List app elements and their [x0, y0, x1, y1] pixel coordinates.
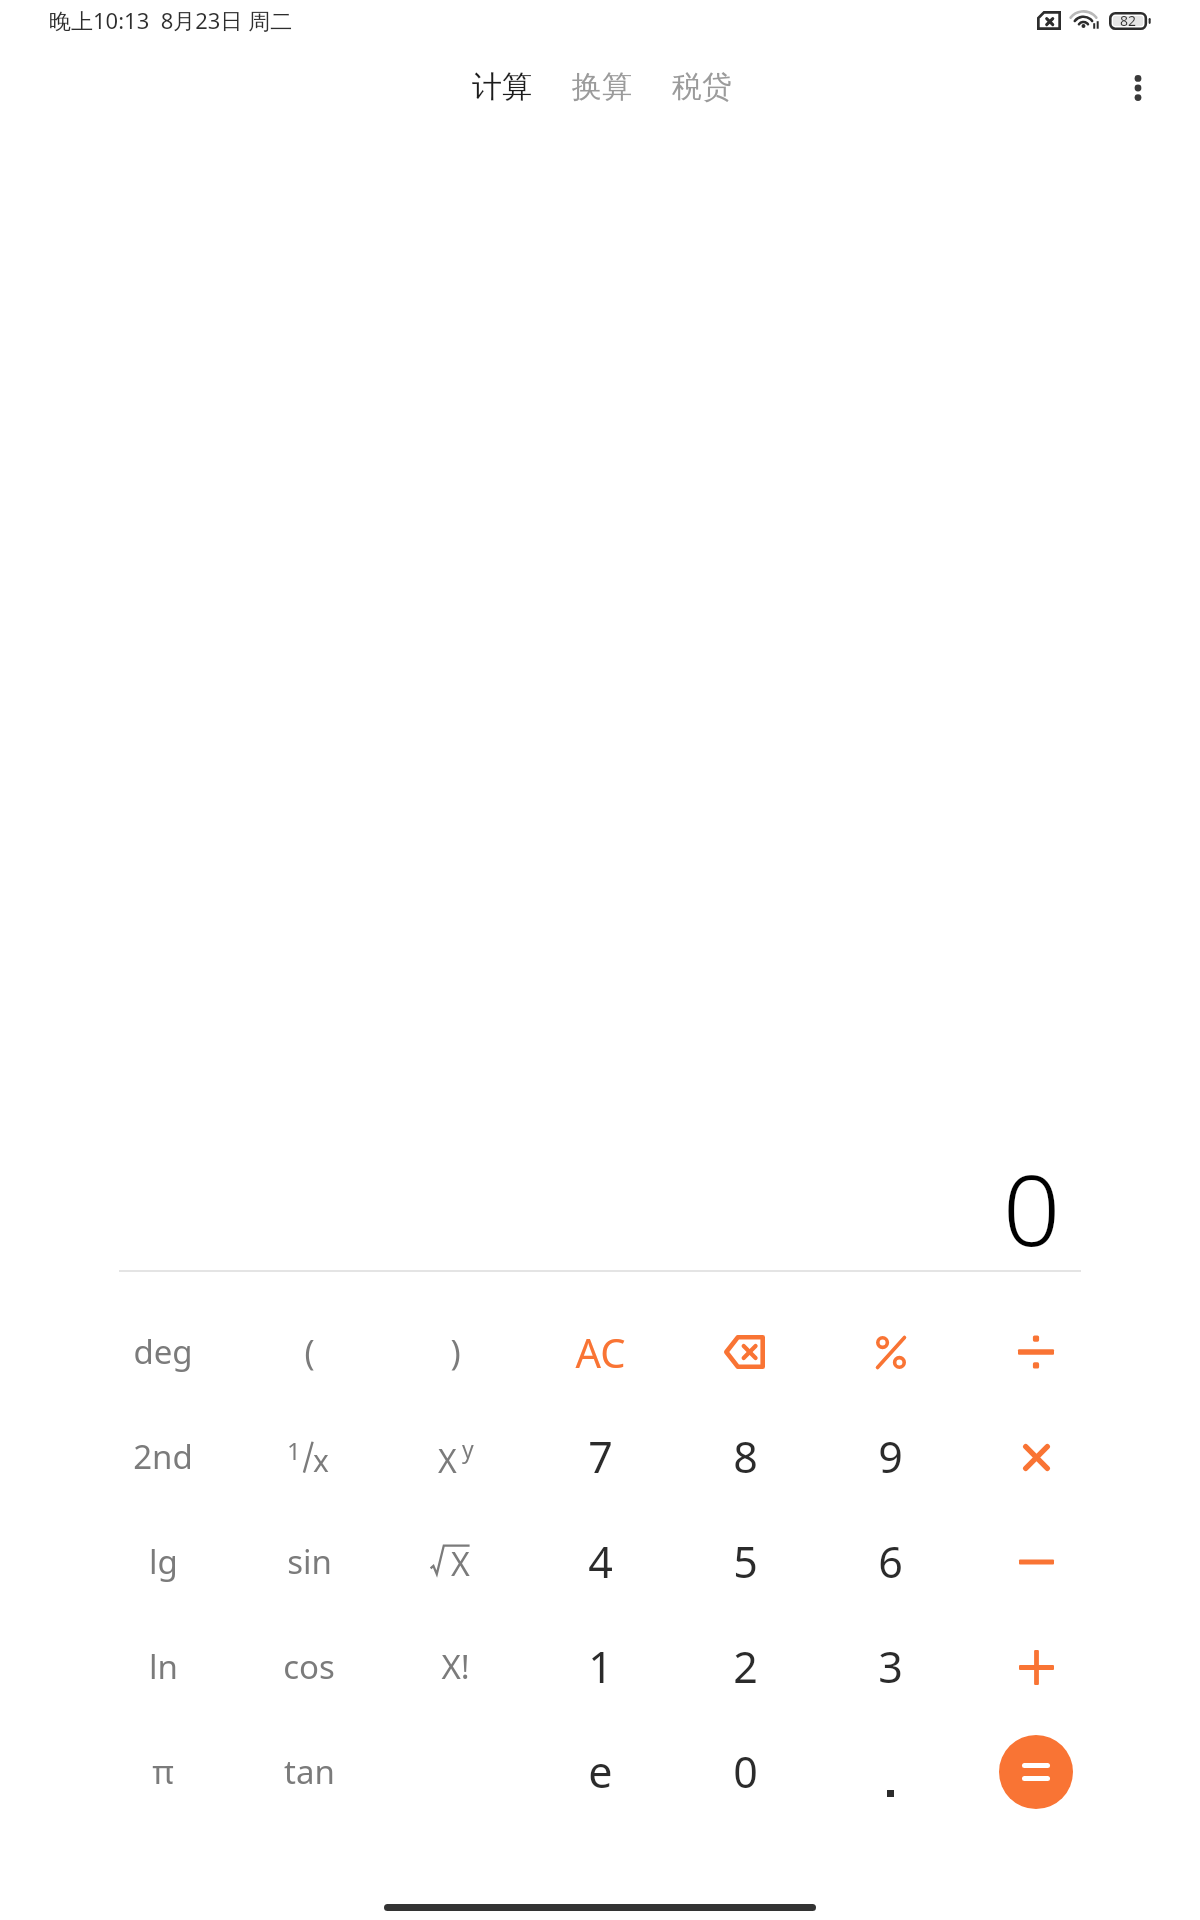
button[interactable]: 2nd — [90, 1404, 236, 1509]
staticText: ln — [149, 1644, 178, 1689]
button[interactable]: ln — [90, 1614, 236, 1719]
button[interactable]: 计算 — [462, 56, 542, 118]
staticText: tan — [284, 1749, 335, 1794]
staticText: lg — [149, 1539, 178, 1584]
button[interactable]: AC — [528, 1299, 673, 1404]
staticText: y — [462, 1433, 474, 1464]
button[interactable]: Backspace — [673, 1299, 818, 1404]
staticText: X — [451, 1542, 470, 1586]
button[interactable]: e — [528, 1719, 673, 1824]
button[interactable]: 4 — [528, 1509, 673, 1614]
button[interactable]: Decimal point — [818, 1719, 963, 1824]
staticText: 2nd — [133, 1434, 193, 1479]
staticText: sin — [287, 1539, 332, 1584]
button[interactable]: ) — [382, 1299, 528, 1404]
staticText: 换算 — [572, 68, 632, 106]
staticText: AC — [575, 1325, 626, 1379]
staticText: 1 — [287, 1434, 301, 1467]
button[interactable]: Minus — [963, 1509, 1108, 1614]
staticText: 1 — [588, 1637, 613, 1696]
button[interactable]: Equals — [963, 1719, 1108, 1824]
button[interactable]: ( — [236, 1299, 382, 1404]
staticText: 8 — [733, 1427, 758, 1486]
staticText: ( — [304, 1329, 315, 1375]
staticText: 4 — [588, 1532, 613, 1591]
button[interactable]: 3 — [818, 1614, 963, 1719]
button[interactable]: 5 — [673, 1509, 818, 1614]
button[interactable]: One over x — [236, 1404, 382, 1509]
button[interactable]: Multiply — [963, 1404, 1108, 1509]
staticText: 7 — [588, 1427, 613, 1486]
staticText: 0 — [733, 1742, 758, 1801]
button[interactable]: Square root of X — [382, 1509, 528, 1614]
button[interactable]: deg — [90, 1299, 236, 1404]
staticText: 税贷 — [672, 68, 732, 106]
button[interactable]: X to the power of y — [382, 1404, 528, 1509]
staticText: cos — [283, 1644, 335, 1689]
button[interactable]: 0 — [673, 1719, 818, 1824]
button[interactable]: 7 — [528, 1404, 673, 1509]
button[interactable]: Divide — [963, 1299, 1108, 1404]
button[interactable]: 换算 — [562, 56, 642, 118]
staticText: 0 — [1003, 1142, 1061, 1274]
staticText: π — [152, 1749, 174, 1794]
button[interactable]: More options — [1104, 56, 1168, 120]
button[interactable]: 税贷 — [662, 56, 742, 118]
button[interactable]: 8 — [673, 1404, 818, 1509]
button[interactable]: tan — [236, 1719, 382, 1824]
button[interactable]: cos — [236, 1614, 382, 1719]
button[interactable]: lg — [90, 1509, 236, 1614]
staticText: 3 — [878, 1637, 903, 1696]
button[interactable]: sin — [236, 1509, 382, 1614]
staticText: 2 — [733, 1637, 758, 1696]
staticText: 9 — [878, 1427, 903, 1486]
button[interactable]: 9 — [818, 1404, 963, 1509]
staticText: 5 — [733, 1532, 758, 1591]
button[interactable]: X! — [382, 1614, 528, 1719]
staticText: 计算 — [472, 68, 532, 106]
staticText: 6 — [878, 1532, 903, 1591]
button[interactable]: 2 — [673, 1614, 818, 1719]
staticText: e — [588, 1742, 613, 1801]
staticText: 晚上10:13 8月23日 周二 — [49, 5, 293, 35]
button[interactable]: Percent — [818, 1299, 963, 1404]
button[interactable]: 1 — [528, 1614, 673, 1719]
button[interactable]: π — [90, 1719, 236, 1824]
staticText: X — [438, 1439, 457, 1483]
staticText: x — [313, 1440, 329, 1481]
staticText: deg — [133, 1329, 193, 1374]
staticText: ) — [450, 1329, 461, 1375]
staticText: X! — [441, 1644, 470, 1689]
button[interactable]: Plus — [963, 1614, 1108, 1719]
staticText: 82 — [1120, 11, 1137, 30]
button[interactable]: 6 — [818, 1509, 963, 1614]
